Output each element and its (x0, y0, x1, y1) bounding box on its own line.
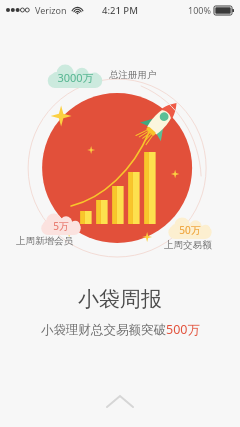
staticText: Verizon (35, 4, 67, 16)
staticText: 小袋理财总交易额突破500万 (41, 321, 200, 338)
staticText: 100% (188, 4, 211, 16)
staticText: 小袋周报 (78, 286, 162, 312)
staticText: 上周交易额 (164, 239, 212, 251)
staticText: 5万 (53, 219, 69, 233)
staticText: 总注册用户 (109, 69, 157, 81)
staticText: 4:21 PM (102, 4, 138, 17)
staticText: 3000万 (57, 70, 94, 85)
staticText: 上周新增会员 (16, 235, 73, 247)
button[interactable]: Scroll up for more (96, 387, 144, 415)
staticText: 50万 (179, 223, 201, 237)
